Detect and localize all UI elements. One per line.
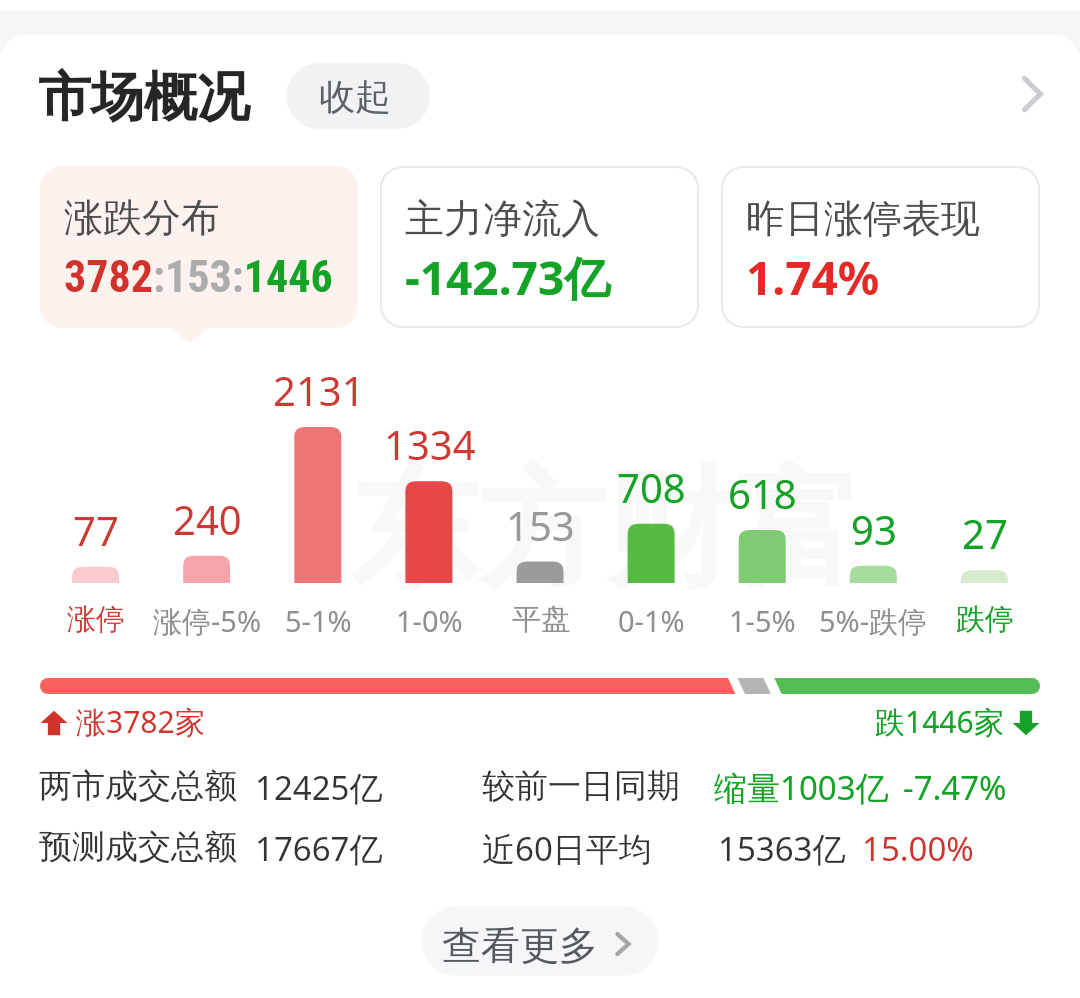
staticText: -142.73亿 [405,246,611,309]
staticText: 市场概况 [38,64,250,131]
staticText: 15.00% [862,826,974,871]
staticText: 跌停 [956,601,1014,638]
staticText: 240 [173,492,242,546]
button[interactable]: 查看更多 [422,906,658,976]
staticText: 93 [851,502,897,556]
button[interactable]: 展开更多 [996,68,1060,132]
staticText: 较前一日同期 [482,765,680,807]
staticText: 77 [73,503,119,557]
staticText: 27 [962,506,1008,560]
staticText: 0-1% [618,601,685,640]
staticText: 跌1446家 [875,701,1004,742]
staticText: 5-1% [285,601,352,640]
staticText: 查看更多 [442,921,598,970]
staticText: 近60日平均 [482,826,652,871]
staticText: 东方财富 [350,450,862,611]
staticText: 708 [617,460,686,514]
staticText: 5%-跌停 [819,601,928,641]
staticText: 预测成交总额 [39,826,237,868]
staticText: 618 [728,466,797,520]
staticText: 涨停-5% [153,601,262,641]
staticText: 收起 [319,74,391,119]
button[interactable]: 主力净流入 [380,166,699,328]
staticText: 平盘 [512,601,570,638]
staticText: 15363亿 [718,826,846,871]
button[interactable]: 昨日涨停表现 [721,166,1040,328]
staticText: 昨日涨停表现 [746,194,980,243]
staticText: 153 [506,498,575,552]
staticText: 涨3782家 [76,701,205,742]
staticText: -7.47% [903,765,1007,810]
staticText: 缩量1003亿 [714,765,889,810]
button[interactable]: 收起 [286,63,430,129]
staticText: 1-5% [729,601,796,640]
staticText: 2131 [273,363,365,417]
staticText: 1334 [384,417,476,471]
staticText: 两市成交总额 [39,765,237,807]
staticText: 涨跌分布 [64,193,220,242]
staticText: 3782:153:1446 [64,251,333,303]
staticText: 12425亿 [255,765,383,810]
staticText: 1-0% [396,601,463,640]
button[interactable]: 涨跌分布 [40,166,358,328]
staticText: 涨停 [67,601,125,638]
staticText: 主力净流入 [405,194,600,243]
staticText: 1.74% [746,246,880,309]
staticText: 17667亿 [255,826,383,871]
